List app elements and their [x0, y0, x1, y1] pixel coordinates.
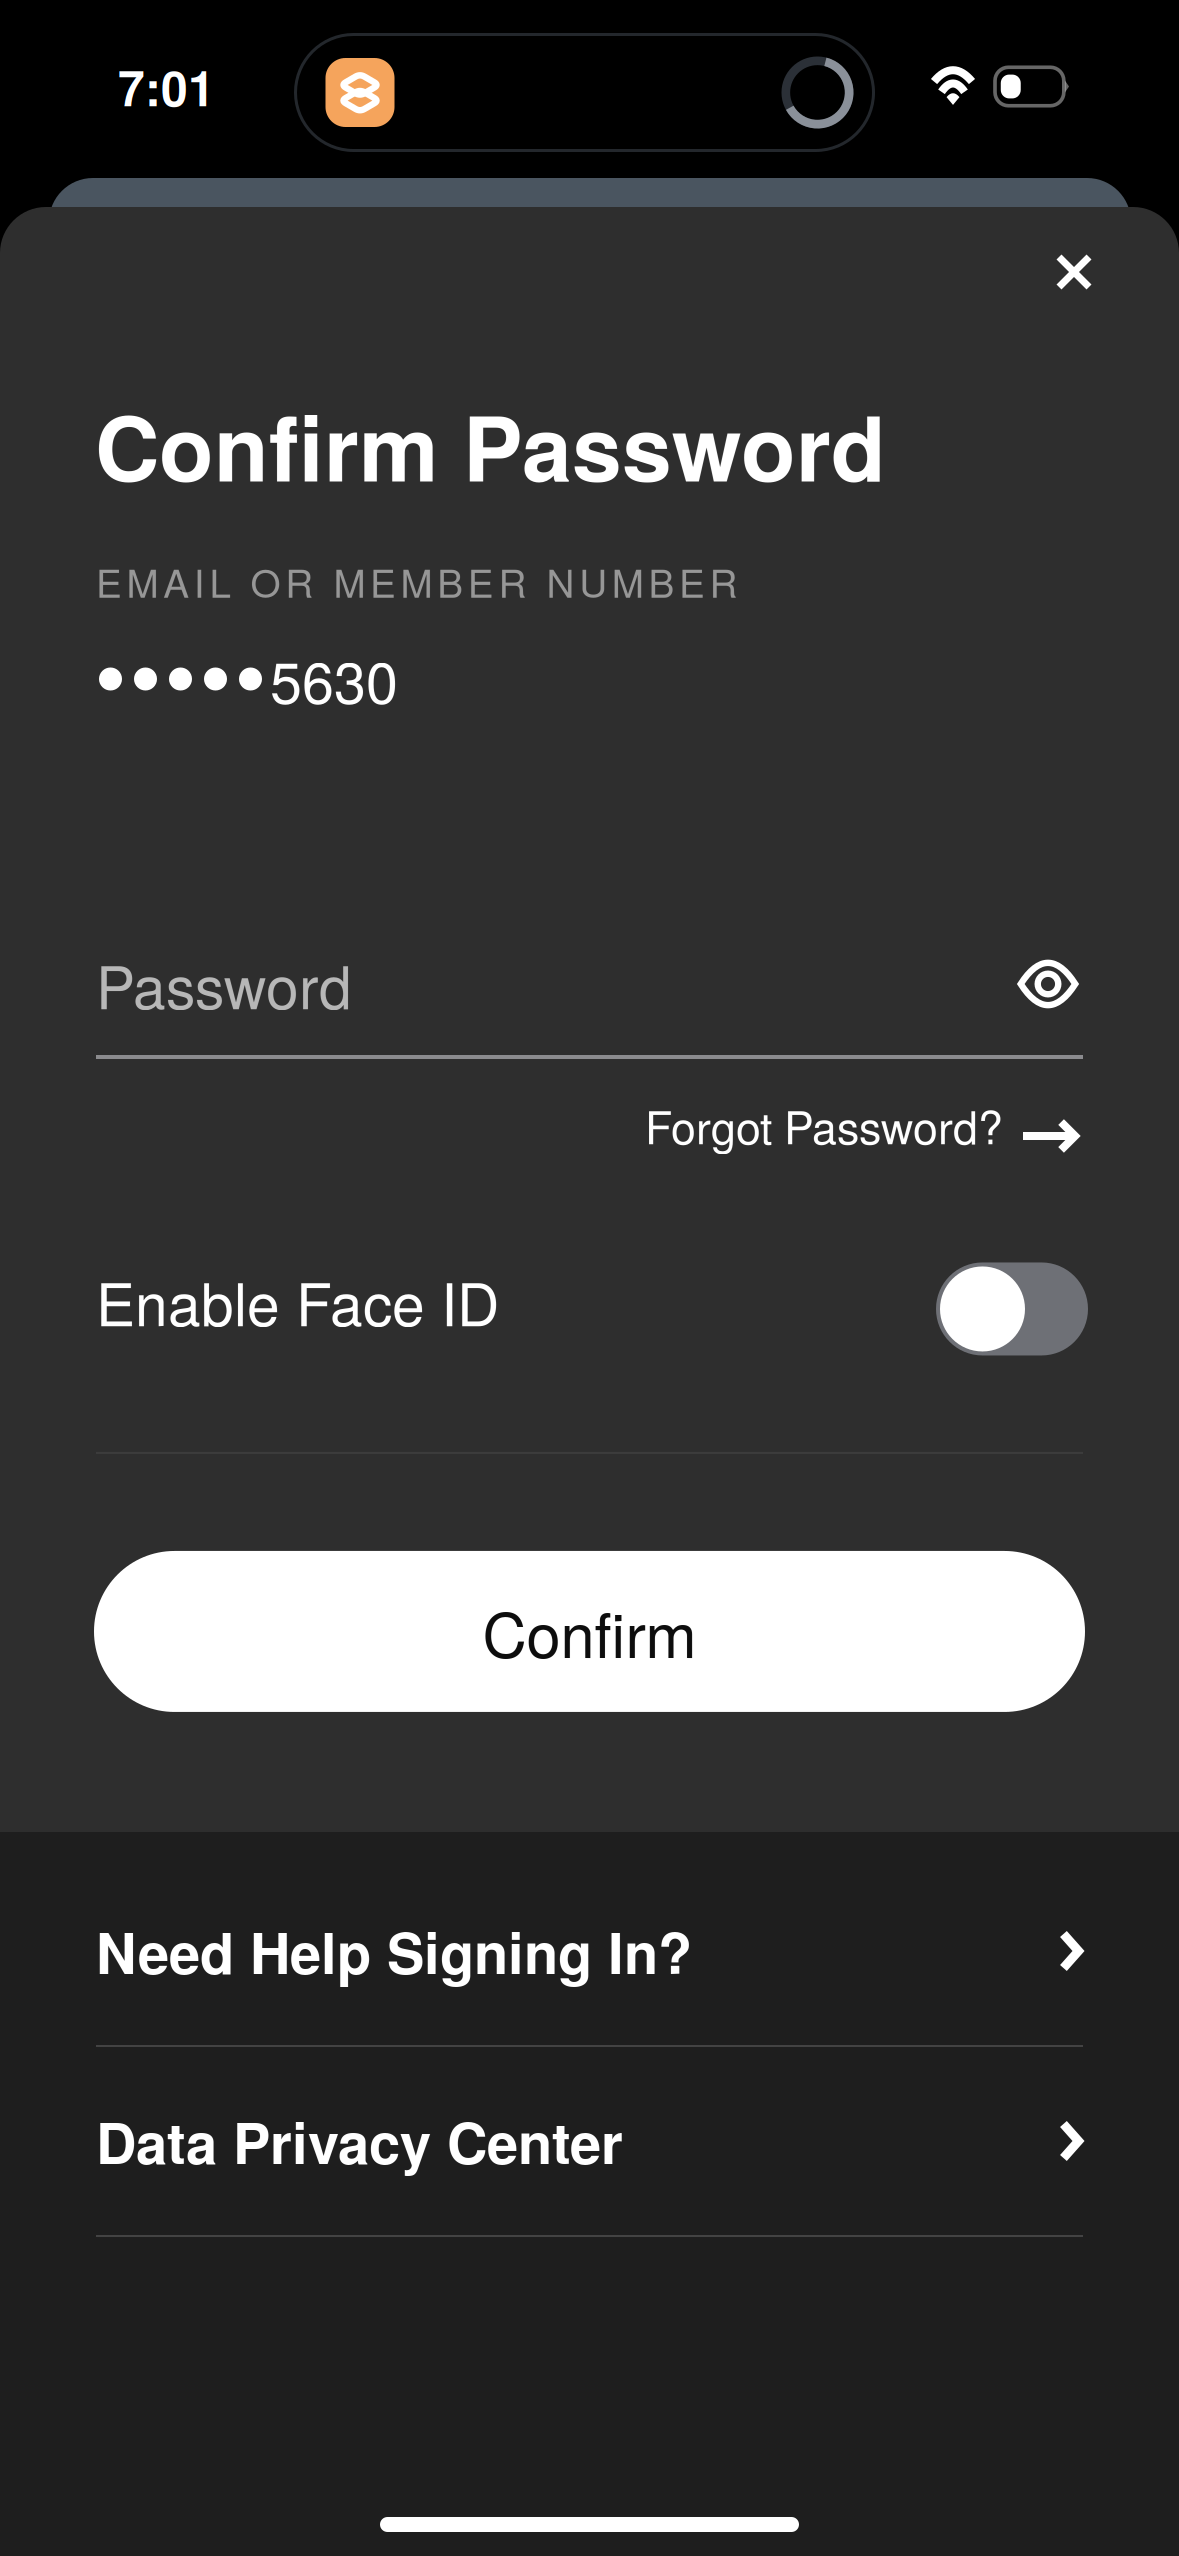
button[interactable]: Show password	[1013, 942, 1083, 1026]
staticText: Enable Face ID	[96, 1259, 499, 1343]
staticText: Password	[96, 942, 352, 1026]
staticText: Need Help Signing In?	[96, 1911, 692, 1991]
button[interactable]: Enable Face ID	[931, 1254, 1083, 1347]
button[interactable]: Close	[1019, 217, 1129, 327]
staticText: Confirm Password	[95, 381, 886, 509]
staticText: Confirm	[482, 1587, 696, 1675]
staticText: Data Privacy Center	[96, 2101, 623, 2181]
staticText: 7:01	[118, 52, 215, 121]
staticText: EMAIL OR MEMBER NUMBER	[96, 553, 738, 609]
staticText: Forgot Password?	[645, 1093, 1003, 1157]
staticText: 5630	[270, 638, 398, 720]
button[interactable]: Forgot Password?	[645, 1075, 1079, 1175]
button[interactable]: Need Help Signing In?	[0, 1857, 1179, 2047]
button[interactable]: Confirm	[94, 1551, 1085, 1712]
button[interactable]: Data Privacy Center	[0, 2047, 1179, 2237]
